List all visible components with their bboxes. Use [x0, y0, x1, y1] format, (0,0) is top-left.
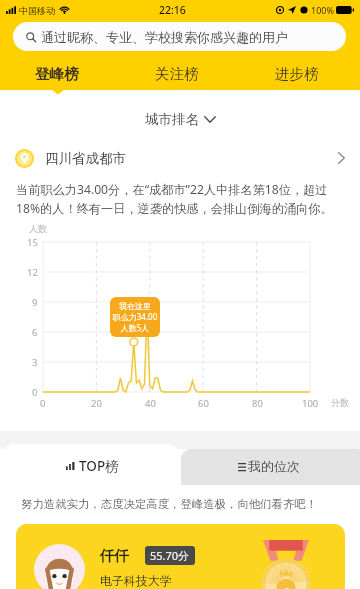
staticText: 关注榜 [155, 65, 199, 83]
staticText: 电子科技大学 [100, 573, 172, 588]
staticText: 人数 [29, 223, 47, 234]
staticText: 60 [198, 397, 209, 410]
staticText: 40 [145, 397, 156, 410]
staticText: 进步榜 [275, 65, 319, 83]
staticText: 我在这里 职么力34.00 人数5人 [110, 301, 160, 333]
staticText: 当前职么力34.00分，在“成都市”22人中排名第18位，超过18%的人！终有一… [16, 181, 346, 217]
staticText: TOP榜 [79, 457, 119, 475]
staticText: 中国移动 [19, 5, 55, 16]
button[interactable]: 1 [16, 524, 345, 589]
staticText: 55.70分 [150, 548, 190, 563]
staticText: 登峰榜 [35, 65, 79, 83]
button[interactable]: 城市排名 [139, 108, 222, 131]
staticText: 仟仟 [100, 547, 129, 565]
staticText: 我的位次 [248, 458, 300, 474]
staticText: 22:16 [159, 3, 186, 17]
button[interactable]: 进步榜 [237, 61, 357, 87]
button[interactable]: 我的位次 [181, 449, 360, 485]
staticText: 20 [91, 397, 102, 410]
staticText: 3 [32, 356, 38, 369]
staticText: 9 [32, 296, 38, 309]
button[interactable]: TOP榜 [4, 444, 178, 485]
staticText: 0 [40, 397, 46, 410]
staticText: 15 [27, 236, 38, 249]
staticText: 1 [283, 583, 291, 589]
staticText: 0 [32, 386, 38, 399]
staticText: 100% [311, 4, 334, 16]
button[interactable]: 登峰榜 [0, 61, 117, 87]
staticText: 努力造就实力，态度决定高度，登峰造极，向他们看齐吧！ [21, 497, 318, 511]
staticText: 80 [252, 397, 263, 410]
staticText: 6 [32, 326, 38, 339]
staticText: 12 [27, 266, 38, 279]
button[interactable]: 四川省成都市 [0, 145, 360, 171]
staticText: 100 [302, 397, 319, 410]
staticText: 城市排名 [145, 111, 199, 128]
staticText: 分数 [331, 397, 349, 408]
button[interactable]: 通过昵称、专业、学校搜索你感兴趣的用户 [13, 22, 346, 51]
staticText: 四川省成都市 [45, 150, 126, 167]
button[interactable]: 关注榜 [117, 61, 237, 87]
staticText: 通过昵称、专业、学校搜索你感兴趣的用户 [41, 29, 288, 45]
